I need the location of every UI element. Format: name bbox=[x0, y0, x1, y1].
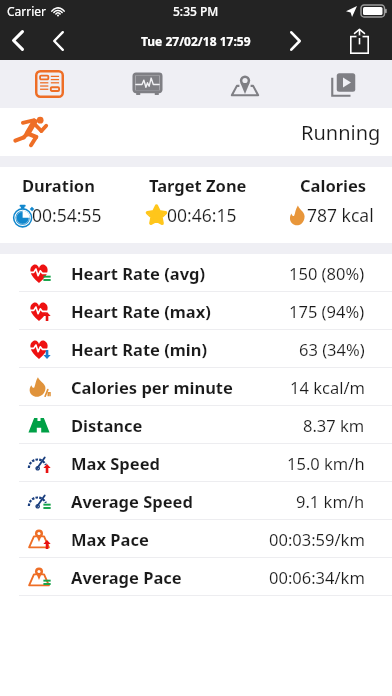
staticText: 14 kcal/m bbox=[290, 376, 365, 398]
button[interactable]: Chart bbox=[98, 60, 196, 108]
staticText: Heart Rate (max) bbox=[71, 300, 211, 322]
button[interactable]: Video bbox=[294, 60, 392, 108]
staticText: 00:46:15 bbox=[167, 203, 237, 227]
staticText: 787 kcal bbox=[307, 203, 374, 227]
staticText: Max Speed bbox=[71, 452, 160, 474]
button[interactable]: Heart Rate (avg) bbox=[0, 254, 392, 292]
button[interactable]: Heart Rate (min) bbox=[0, 330, 392, 368]
button[interactable]: Summary bbox=[0, 60, 98, 108]
staticText: 5:35 PM bbox=[173, 3, 219, 19]
staticText: Running bbox=[301, 119, 381, 146]
staticText: Carrier bbox=[7, 3, 47, 19]
button[interactable]: Next bbox=[282, 21, 309, 60]
staticText: Calories bbox=[300, 174, 367, 196]
staticText: Target Zone bbox=[149, 174, 247, 196]
staticText: 15.0 km/h bbox=[287, 452, 365, 474]
button[interactable]: Max Pace bbox=[0, 520, 392, 558]
staticText: Calories per minute bbox=[71, 376, 233, 398]
button[interactable]: Previous bbox=[44, 21, 72, 60]
staticText: Average Pace bbox=[71, 566, 182, 588]
button[interactable]: Average Pace bbox=[0, 558, 392, 596]
staticText: Heart Rate (avg) bbox=[71, 262, 206, 284]
staticText: 63 (34%) bbox=[299, 338, 365, 360]
staticText: 00:54:55 bbox=[32, 203, 102, 227]
staticText: 9.1 km/h bbox=[296, 490, 365, 512]
button[interactable]: Back bbox=[0, 21, 36, 60]
staticText: 00:06:34/km bbox=[269, 566, 365, 588]
button[interactable]: Map bbox=[196, 60, 294, 108]
staticText: Average Speed bbox=[71, 490, 193, 512]
staticText: Duration bbox=[22, 174, 95, 196]
staticText: Distance bbox=[71, 414, 143, 436]
button[interactable]: Average Speed bbox=[0, 482, 392, 520]
button[interactable]: Calories per minute bbox=[0, 368, 392, 406]
button[interactable]: Share bbox=[337, 21, 382, 60]
staticText: 150 (80%) bbox=[289, 262, 365, 284]
button[interactable]: Heart Rate (max) bbox=[0, 292, 392, 330]
staticText: Heart Rate (min) bbox=[71, 338, 208, 360]
staticText: 175 (94%) bbox=[289, 300, 365, 322]
staticText: Tue 27/02/18 17:59 bbox=[141, 33, 251, 49]
button[interactable]: Distance bbox=[0, 406, 392, 444]
staticText: 8.37 km bbox=[303, 414, 365, 436]
staticText: 00:03:59/km bbox=[269, 528, 365, 550]
staticText: Max Pace bbox=[71, 528, 149, 550]
button[interactable]: Max Speed bbox=[0, 444, 392, 482]
